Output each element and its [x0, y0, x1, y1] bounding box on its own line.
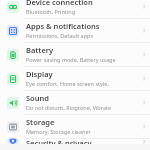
staticText: Display [26, 69, 53, 79]
staticText: Eye comfort, Home screen style, Wallpape… [26, 80, 136, 87]
button[interactable]: Security & privacy [0, 138, 150, 144]
staticText: Device connection [26, 0, 93, 7]
staticText: Memory, Storage cleaner [26, 128, 91, 135]
other: Open Apps & notifications [138, 18, 150, 42]
staticText: Power saving mode, Battery usage [26, 56, 116, 63]
other: Open Security & privacy [138, 138, 150, 144]
staticText: Security & privacy [26, 138, 92, 144]
other: Open Device connection [138, 0, 150, 18]
staticText: Permissions, Default apps [26, 32, 94, 39]
other: Open Sound [138, 90, 150, 114]
button[interactable]: Sound [0, 90, 150, 114]
other: Open Battery [138, 42, 150, 66]
button[interactable]: Storage [0, 114, 150, 138]
button[interactable]: Display [0, 66, 150, 90]
button[interactable]: Battery [0, 42, 150, 66]
staticText: Bluetooth, Printing [26, 8, 76, 15]
other: Open Storage [138, 114, 150, 138]
staticText: Do not disturb, Ringtone, Vibrate [26, 104, 112, 111]
button[interactable]: Apps & notifications [0, 18, 150, 42]
staticText: Storage [26, 117, 55, 127]
staticText: Apps & notifications [26, 21, 100, 31]
other: Open Display [138, 66, 150, 90]
staticText: Battery [26, 45, 54, 55]
staticText: Sound [26, 93, 50, 103]
button[interactable]: Device connection [0, 0, 150, 18]
